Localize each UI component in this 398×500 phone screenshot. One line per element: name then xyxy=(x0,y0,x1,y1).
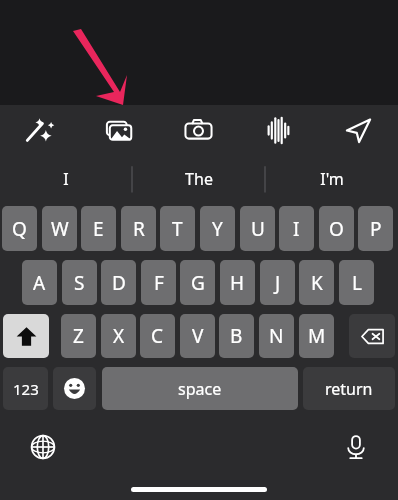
button[interactable]: J xyxy=(260,260,295,305)
button[interactable]: Backspace xyxy=(349,314,395,358)
staticText: O xyxy=(329,216,344,242)
staticText: space xyxy=(178,378,222,400)
button[interactable]: R xyxy=(121,206,156,251)
button[interactable]: C xyxy=(140,314,175,358)
button[interactable]: I xyxy=(0,155,132,202)
staticText: A xyxy=(33,270,46,296)
button[interactable]: P xyxy=(358,206,393,251)
staticText: P xyxy=(370,216,382,242)
staticText: Y xyxy=(212,216,223,242)
staticText: I xyxy=(293,216,300,242)
button[interactable]: Y xyxy=(200,206,235,251)
staticText: 123 xyxy=(13,379,39,399)
staticText: J xyxy=(275,270,281,296)
button[interactable]: H xyxy=(220,260,255,305)
staticText: I'm xyxy=(320,168,344,190)
button[interactable]: V xyxy=(180,314,215,358)
staticText: X xyxy=(113,323,125,349)
staticText: F xyxy=(154,270,164,296)
staticText: U xyxy=(251,216,265,242)
button[interactable]: space xyxy=(102,367,298,410)
button[interactable]: W xyxy=(42,206,77,251)
staticText: Q xyxy=(12,216,27,242)
staticText: V xyxy=(192,323,204,349)
button[interactable]: Send xyxy=(318,105,398,155)
staticText: N xyxy=(269,323,284,349)
staticText: M xyxy=(308,323,326,349)
button[interactable]: X xyxy=(101,314,136,358)
button[interactable]: N xyxy=(259,314,294,358)
button[interactable]: O xyxy=(319,206,354,251)
button[interactable]: T xyxy=(160,206,195,251)
staticText: C xyxy=(151,323,164,349)
staticText: return xyxy=(325,378,373,400)
button[interactable]: F xyxy=(141,260,176,305)
button[interactable]: L xyxy=(339,260,374,305)
staticText: E xyxy=(93,216,104,242)
staticText: H xyxy=(230,270,245,296)
button[interactable]: 123 xyxy=(3,367,48,410)
button[interactable]: E xyxy=(81,206,116,251)
button[interactable]: Shift xyxy=(3,314,49,358)
button[interactable]: A xyxy=(22,260,57,305)
button[interactable]: The xyxy=(132,155,265,202)
button[interactable]: D xyxy=(101,260,136,305)
button[interactable]: G xyxy=(180,260,215,305)
staticText: W xyxy=(51,216,69,242)
button[interactable]: Camera xyxy=(158,105,238,155)
staticText: G xyxy=(191,270,205,296)
button[interactable]: Audio xyxy=(238,105,318,155)
staticText: I xyxy=(63,168,69,190)
staticText: B xyxy=(230,323,243,349)
button[interactable]: Emoji xyxy=(53,367,96,410)
button[interactable]: B xyxy=(219,314,254,358)
staticText: The xyxy=(185,168,213,190)
button[interactable]: Effects xyxy=(0,105,79,155)
staticText: L xyxy=(352,270,362,296)
staticText: T xyxy=(172,216,183,242)
button[interactable]: return xyxy=(303,367,395,410)
button[interactable]: I'm xyxy=(265,155,398,202)
button[interactable]: Z xyxy=(61,314,96,358)
button[interactable]: Dictate xyxy=(339,430,373,464)
button[interactable]: K xyxy=(299,260,334,305)
button[interactable]: U xyxy=(240,206,275,251)
staticText: D xyxy=(112,270,126,296)
button[interactable]: M xyxy=(299,314,334,358)
button[interactable]: Change keyboard xyxy=(26,430,60,464)
button[interactable]: S xyxy=(62,260,97,305)
button[interactable]: Photos xyxy=(79,105,158,155)
staticText: S xyxy=(74,270,85,296)
staticText: Z xyxy=(73,323,84,349)
button[interactable]: I xyxy=(279,206,314,251)
staticText: R xyxy=(133,216,145,242)
staticText: K xyxy=(311,270,323,296)
button[interactable]: Q xyxy=(2,206,37,251)
